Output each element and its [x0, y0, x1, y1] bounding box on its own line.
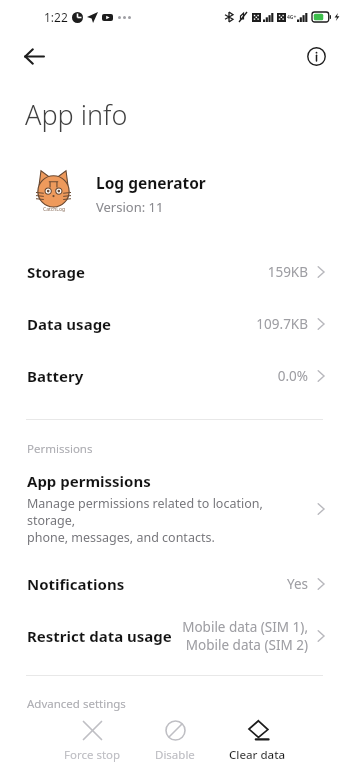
staticText: Force stop — [64, 747, 121, 763]
staticText: App permissions — [27, 471, 151, 491]
staticText: 109.7KB — [256, 315, 308, 333]
button[interactable]: Notifications — [0, 558, 349, 610]
staticText: 4G+ — [287, 14, 297, 21]
button[interactable]: Storage — [0, 246, 349, 298]
staticText: Advanced settings — [27, 696, 126, 712]
staticText: 1:22 — [44, 9, 68, 25]
staticText: Clear data — [229, 747, 286, 763]
staticText: Yes — [286, 575, 308, 593]
staticText: Disable — [155, 747, 195, 763]
staticText: Battery — [27, 366, 84, 386]
staticText: Version: 11 — [96, 198, 164, 216]
button[interactable]: Force stop — [60, 717, 125, 766]
button[interactable]: Clear data — [225, 716, 290, 766]
staticText: 0.0% — [277, 367, 308, 385]
staticText: Storage — [27, 262, 85, 282]
staticText: Data usage — [27, 314, 112, 334]
button[interactable]: Battery — [0, 350, 349, 402]
staticText: CatchLog — [43, 206, 65, 213]
staticText: Mobile data (SIM 1), Mobile data (SIM 2) — [182, 618, 308, 654]
button[interactable]: Back — [14, 36, 54, 76]
button[interactable]: App permissions — [0, 467, 349, 550]
staticText: App info — [25, 96, 128, 133]
staticText: Restrict data usage — [27, 626, 172, 646]
staticText: 159KB — [267, 263, 308, 281]
staticText: Notifications — [27, 574, 125, 594]
button[interactable]: App details — [297, 37, 335, 75]
button[interactable]: Disable — [151, 717, 199, 766]
button[interactable]: Restrict data usage — [0, 610, 349, 662]
staticText: Log generator — [96, 172, 206, 193]
button[interactable]: Data usage — [0, 298, 349, 350]
staticText: Permissions — [27, 441, 93, 457]
staticText: Manage permissions related to location, … — [27, 495, 308, 546]
